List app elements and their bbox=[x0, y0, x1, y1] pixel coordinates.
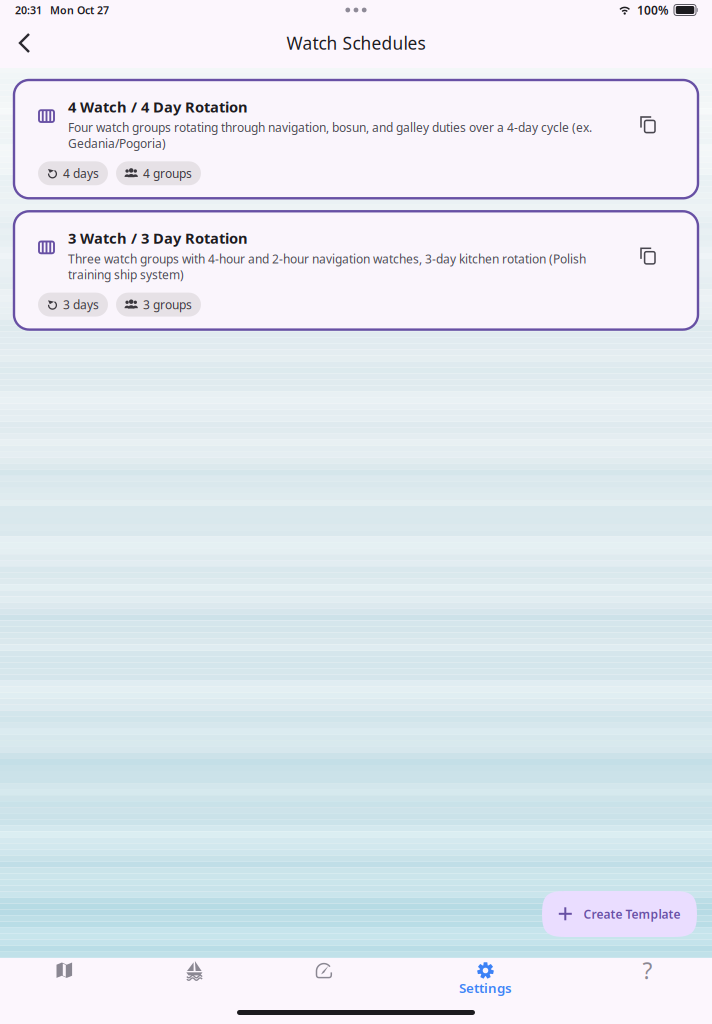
staticText: Settings bbox=[459, 979, 512, 997]
staticText: Four watch groups rotating through navig… bbox=[68, 119, 592, 151]
staticText: Mon Oct 27 bbox=[50, 3, 109, 17]
button[interactable]: Create Template bbox=[542, 891, 697, 937]
staticText: Create Template bbox=[583, 906, 680, 922]
button[interactable]: Back bbox=[10, 25, 39, 61]
staticText: 3 groups bbox=[143, 297, 192, 312]
staticText: 20:31 bbox=[15, 3, 42, 17]
button[interactable]: Duplicate template bbox=[631, 239, 665, 273]
button[interactable]: Vessel bbox=[129, 958, 260, 998]
button[interactable]: Instruments bbox=[260, 958, 388, 998]
button[interactable]: Help bbox=[583, 958, 712, 998]
staticText: 4 Watch / 4 Day Rotation bbox=[68, 97, 248, 116]
staticText: 4 days bbox=[63, 165, 99, 181]
staticText: 4 groups bbox=[143, 165, 192, 181]
button[interactable]: Map bbox=[0, 958, 129, 998]
staticText: 100% bbox=[637, 2, 669, 18]
button[interactable]: Duplicate template bbox=[631, 108, 665, 142]
staticText: 3 Watch / 3 Day Rotation bbox=[68, 228, 248, 248]
staticText: Three watch groups with 4-hour and 2-hou… bbox=[68, 251, 586, 283]
button[interactable]: Settings bbox=[388, 958, 583, 998]
staticText: 3 days bbox=[63, 297, 99, 312]
staticText: Watch Schedules bbox=[286, 31, 425, 54]
staticText: ? bbox=[642, 955, 652, 985]
